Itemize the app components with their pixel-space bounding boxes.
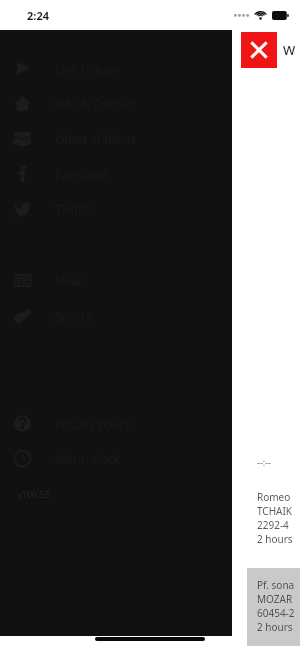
staticText: v100.55 <box>17 488 50 500</box>
staticText: WFCR <box>283 41 300 59</box>
staticText: Pf. sona <box>257 578 295 592</box>
staticText: 2 hours <box>257 620 293 634</box>
staticText: 2292-4 <box>257 518 289 532</box>
staticText: 2 hours <box>257 532 293 546</box>
staticText: 2:24 <box>27 8 49 23</box>
staticText: Romeo <box>257 490 291 504</box>
staticText: 60454-2 <box>257 606 295 620</box>
staticText: MOZAR <box>257 592 293 606</box>
button[interactable]: Pf. sona <box>257 578 300 634</box>
button[interactable]: Close <box>241 32 277 68</box>
staticText: TCHAIK <box>257 504 293 518</box>
staticText: --:-- <box>257 456 272 468</box>
button[interactable]: Romeo <box>257 490 300 546</box>
